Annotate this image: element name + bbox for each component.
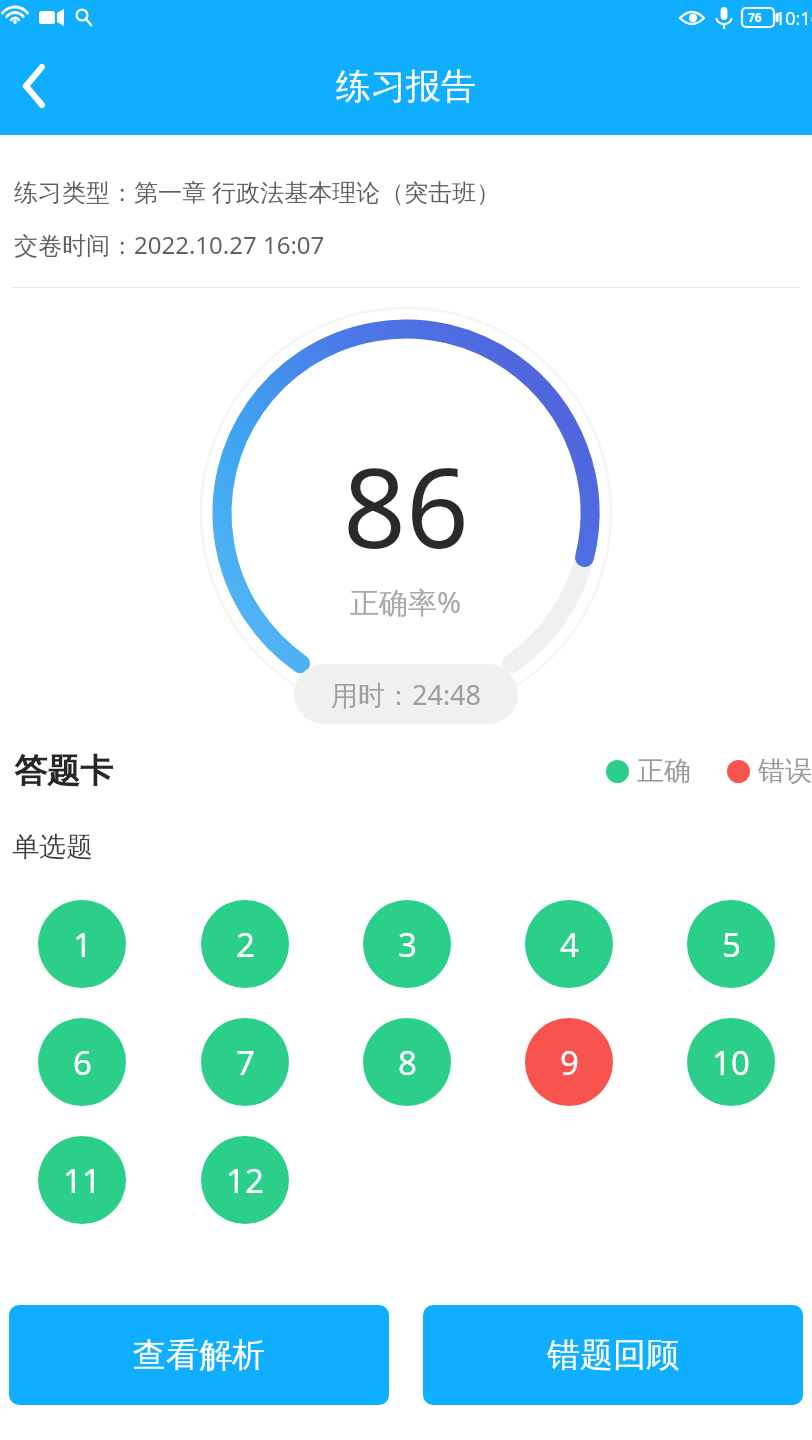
staticText: 11 (63, 1158, 101, 1203)
staticText: 10 (712, 1040, 750, 1085)
button[interactable]: 1 (38, 900, 126, 988)
staticText: 8 (398, 1040, 417, 1085)
staticText: 10:16 (775, 6, 812, 31)
staticText: 练习报告 (336, 64, 476, 108)
staticText: 练习类型：第一章 行政法基本理论（突击班） (14, 175, 501, 208)
staticText: 错误 (758, 754, 812, 788)
button[interactable]: 查看解析 (9, 1305, 389, 1405)
button[interactable]: 5 (687, 900, 775, 988)
button[interactable]: 12 (201, 1136, 289, 1224)
button[interactable]: Back (0, 36, 64, 135)
button[interactable]: 8 (363, 1018, 451, 1106)
staticText: 3 (398, 922, 417, 967)
button[interactable]: 6 (38, 1018, 126, 1106)
button[interactable]: 7 (201, 1018, 289, 1106)
staticText: 1 (73, 922, 92, 967)
staticText: 12 (226, 1158, 264, 1203)
staticText: 交卷时间：2022.10.27 16:07 (14, 228, 325, 261)
staticText: 2 (236, 922, 255, 967)
staticText: 答题卡 (14, 750, 113, 792)
staticText: 正确 (637, 754, 691, 788)
button[interactable]: 11 (38, 1136, 126, 1224)
staticText: 4 (560, 922, 579, 967)
staticText: 7 (236, 1040, 255, 1085)
staticText: 查看解析 (133, 1334, 265, 1376)
staticText: 单选题 (12, 830, 93, 864)
button[interactable]: 9 (525, 1018, 613, 1106)
staticText: 9 (560, 1040, 579, 1085)
staticText: 6 (73, 1040, 92, 1085)
button[interactable]: 3 (363, 900, 451, 988)
staticText: 正确率% (350, 582, 462, 622)
button[interactable]: 10 (687, 1018, 775, 1106)
staticText: 86 (343, 430, 469, 580)
staticText: 用时：24:48 (331, 676, 482, 713)
button[interactable]: 4 (525, 900, 613, 988)
staticText: 错题回顾 (547, 1334, 679, 1376)
button[interactable]: 错题回顾 (423, 1305, 803, 1405)
staticText: 5 (722, 922, 741, 967)
staticText: 76 (748, 9, 762, 25)
button[interactable]: 2 (201, 900, 289, 988)
